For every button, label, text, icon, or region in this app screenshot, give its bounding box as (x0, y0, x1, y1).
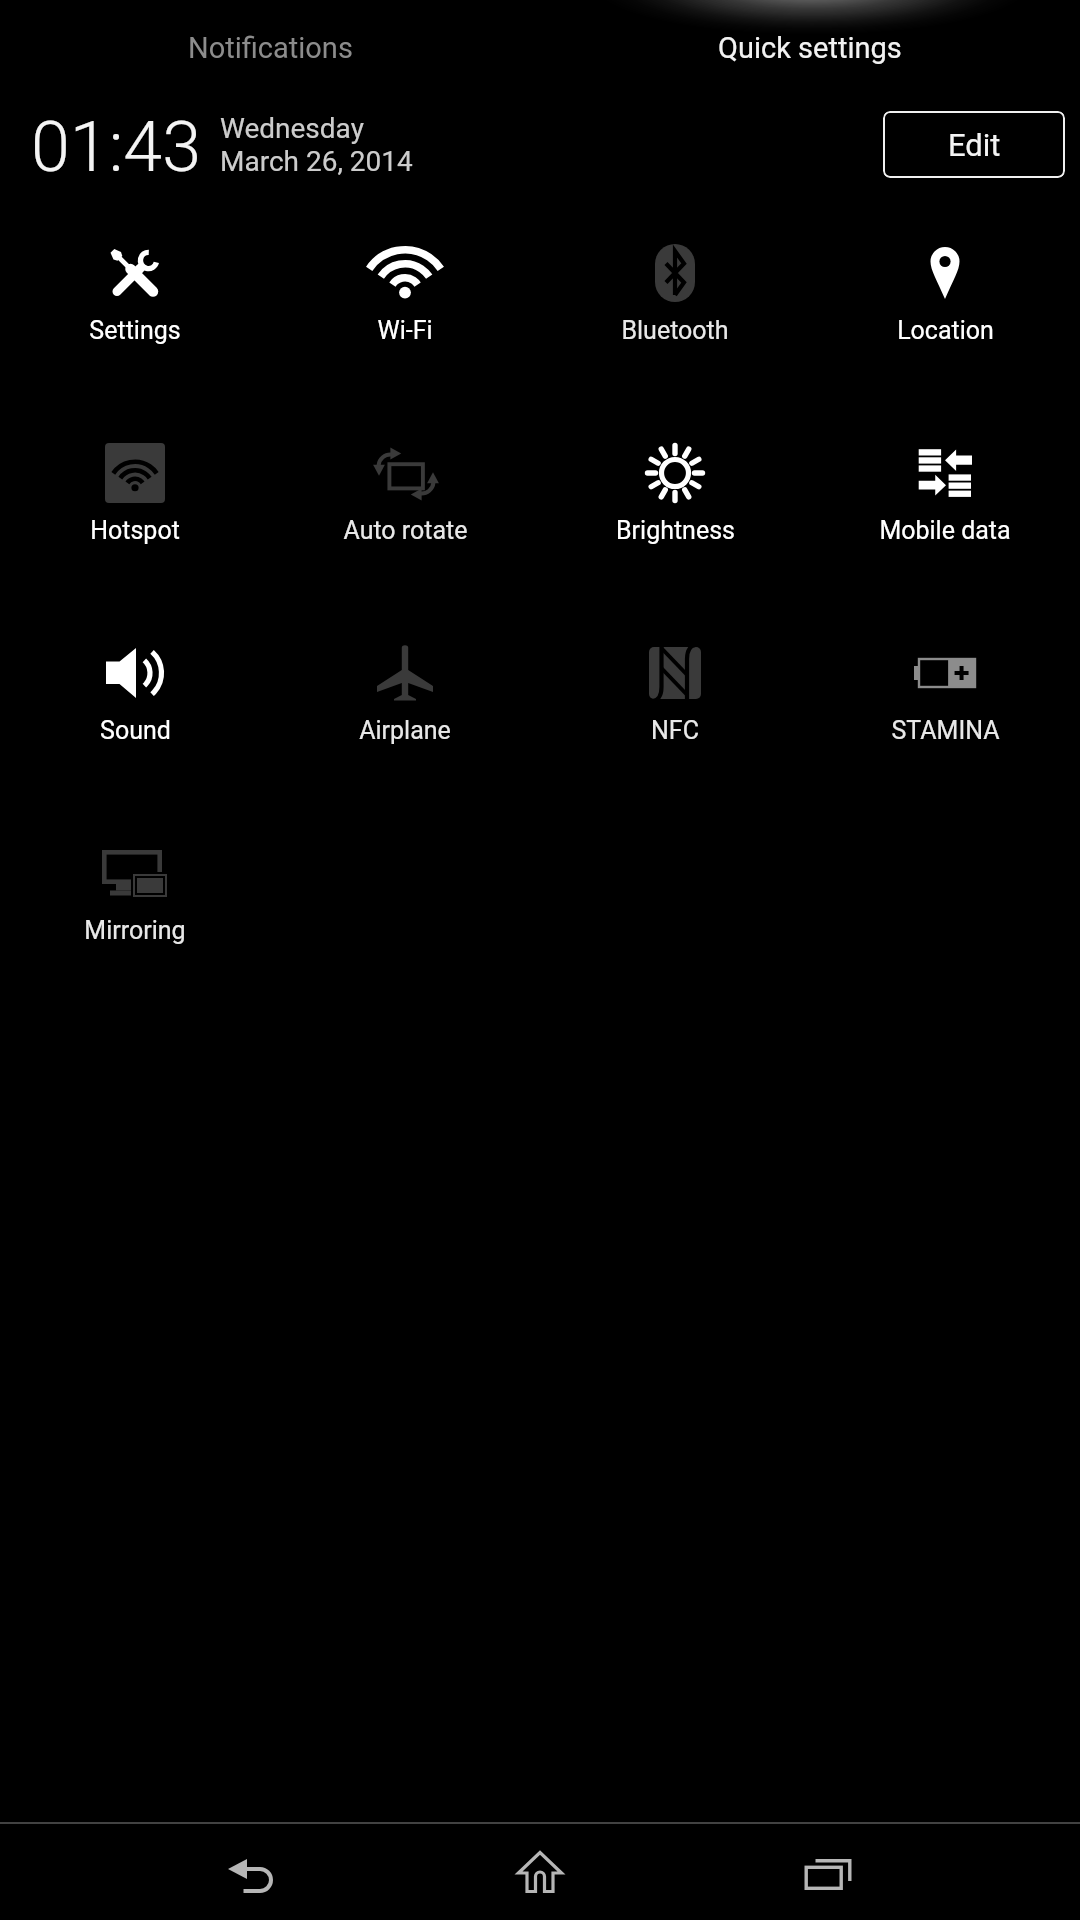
staticText: Bluetooth (621, 316, 729, 345)
staticText: 01:43 (31, 106, 202, 188)
button[interactable]: Back (175, 1824, 325, 1920)
button[interactable]: Airplane (270, 600, 540, 800)
staticText: March 26, 2014 (220, 145, 413, 178)
staticText: Auto rotate (343, 516, 468, 545)
button[interactable]: Quick settings (540, 0, 1080, 96)
staticText: Notifications (188, 31, 353, 65)
button[interactable]: NFC (540, 600, 810, 800)
button[interactable]: Location (810, 200, 1080, 400)
staticText: STAMINA (891, 716, 1000, 745)
staticText: Quick settings (718, 31, 902, 65)
staticText: Hotspot (90, 516, 180, 545)
staticText: Mobile data (879, 516, 1011, 545)
staticText: Wi-Fi (377, 316, 433, 345)
staticText: Wednesday (220, 112, 364, 145)
staticText: Mirroring (84, 916, 186, 945)
button[interactable]: Hotspot (0, 400, 270, 600)
staticText: Settings (89, 316, 181, 345)
staticText: Airplane (359, 716, 451, 745)
button[interactable]: Mobile data (810, 400, 1080, 600)
staticText: Brightness (616, 516, 735, 545)
button[interactable]: Sound (0, 600, 270, 800)
staticText: Edit (948, 127, 1001, 163)
button[interactable]: Mirroring (0, 800, 270, 1000)
staticText: Location (897, 316, 994, 345)
staticText: NFC (651, 716, 699, 745)
button[interactable]: Notifications (0, 0, 540, 96)
button[interactable]: Recent apps (753, 1824, 903, 1920)
button[interactable]: Auto rotate (270, 400, 540, 600)
button[interactable]: Settings (0, 200, 270, 400)
button[interactable]: Home (465, 1824, 615, 1920)
button[interactable]: Edit (883, 111, 1065, 178)
button[interactable]: Bluetooth (540, 200, 810, 400)
staticText: Sound (100, 716, 171, 745)
button[interactable]: Wi-Fi (270, 200, 540, 400)
button[interactable]: Brightness (540, 400, 810, 600)
button[interactable]: STAMINA (810, 600, 1080, 800)
